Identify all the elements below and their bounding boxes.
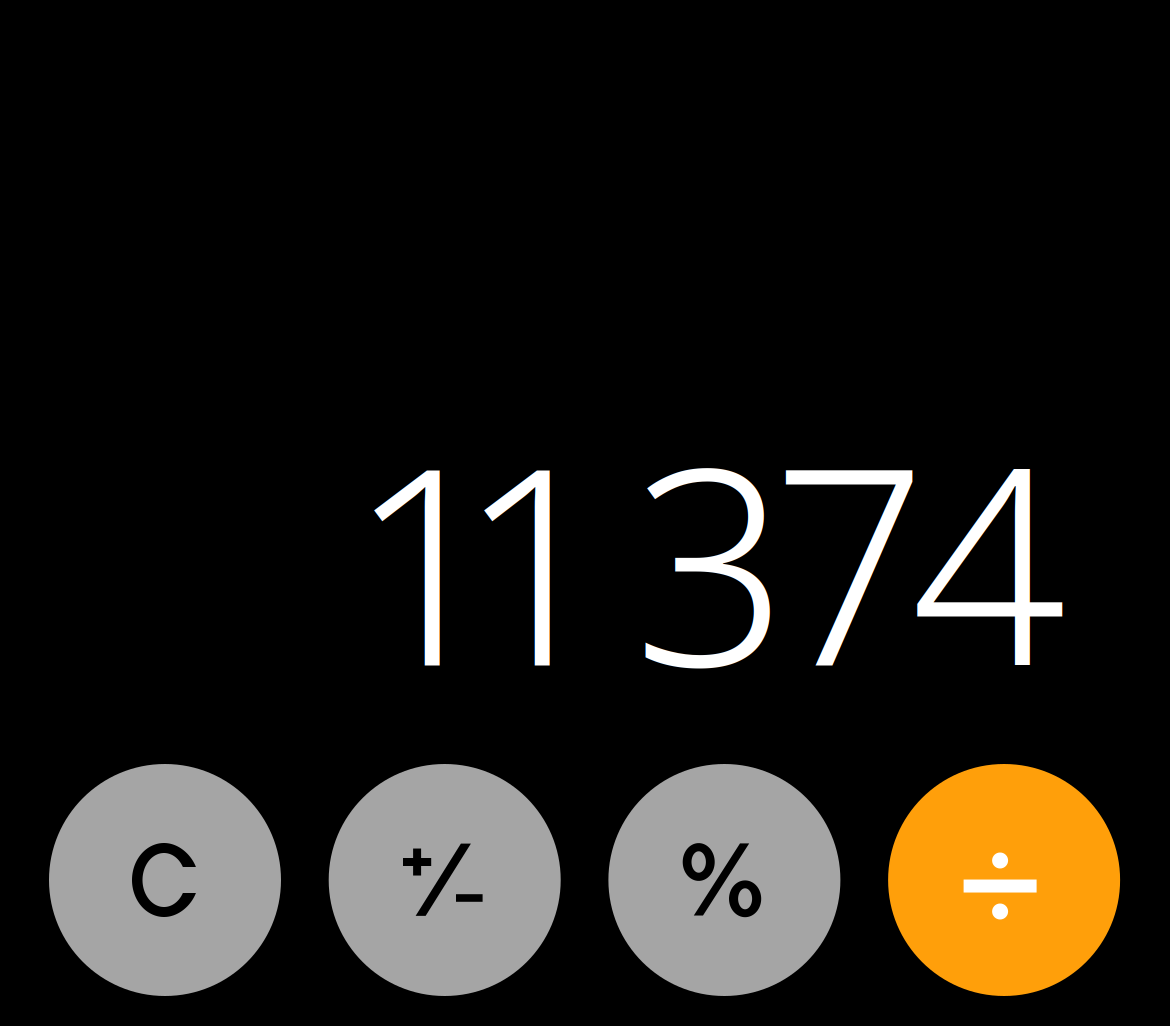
staticText: 374	[633, 379, 1066, 741]
button[interactable]: Percent	[608, 764, 840, 996]
button[interactable]: Clear	[49, 764, 281, 996]
button[interactable]: Divide	[888, 764, 1120, 996]
staticText: 11	[348, 379, 613, 741]
button[interactable]: Toggle sign	[329, 764, 561, 996]
